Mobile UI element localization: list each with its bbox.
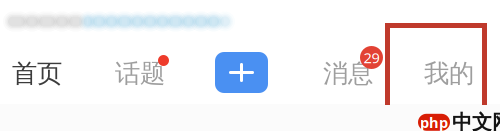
staticText: 中文网: [452, 110, 500, 131]
staticText: 我的: [424, 58, 474, 89]
staticText: 29: [363, 48, 379, 67]
staticText: php: [420, 112, 448, 131]
button[interactable]: 我的: [414, 33, 489, 104]
staticText: 消息: [323, 58, 373, 89]
button[interactable]: 话题: [103, 33, 188, 104]
button[interactable]: 消息: [311, 33, 396, 104]
button[interactable]: 首页: [0, 33, 85, 104]
staticText: 首页: [12, 58, 62, 89]
button[interactable]: 发布: [205, 33, 278, 104]
staticText: 话题: [115, 58, 165, 89]
